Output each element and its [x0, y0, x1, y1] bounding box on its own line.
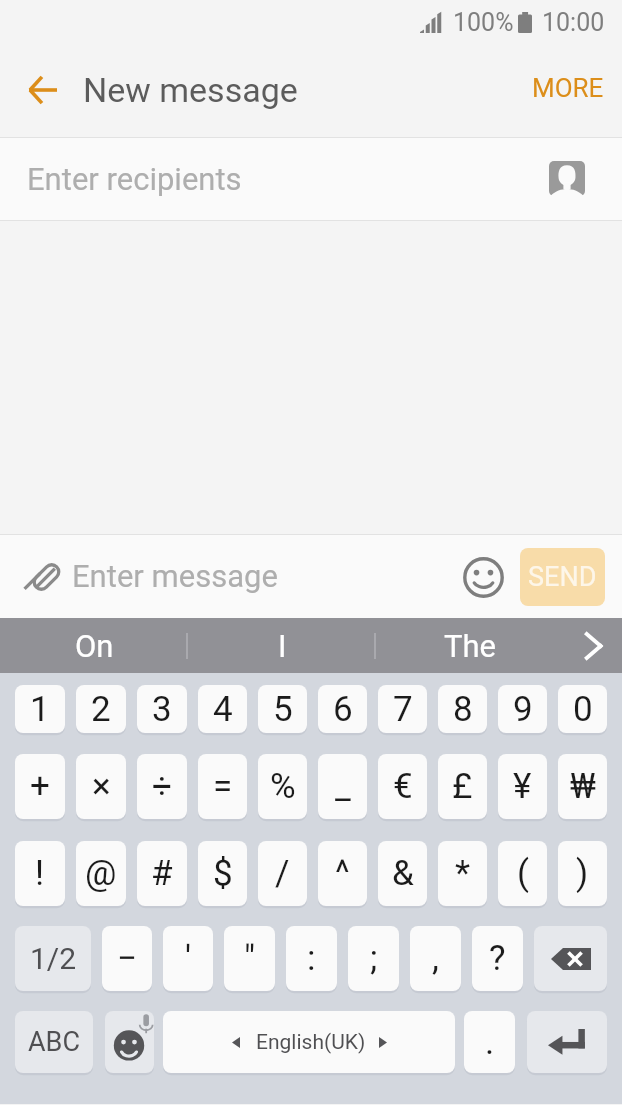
button[interactable]: " [224, 926, 275, 991]
staticText: * [455, 853, 471, 894]
staticText: ¥ [513, 766, 532, 807]
staticText: 1 [30, 689, 50, 730]
button[interactable]: ( [498, 841, 547, 906]
staticText: 6 [333, 689, 353, 730]
staticText: Enter message [72, 558, 278, 594]
staticText: ^ [335, 853, 350, 894]
staticText: On [75, 628, 114, 664]
button[interactable]: 7 [378, 685, 427, 733]
button[interactable]: I [188, 618, 376, 673]
staticText: SEND [528, 561, 597, 593]
button[interactable]: 1 [15, 685, 65, 733]
staticText: £ [452, 766, 473, 807]
staticText: ; [370, 938, 378, 979]
staticText: & [392, 853, 414, 894]
button[interactable]: The [376, 618, 564, 673]
staticText: 2 [91, 689, 111, 730]
button[interactable]: € [378, 754, 427, 819]
button[interactable]: English(UK) [163, 1011, 455, 1073]
button[interactable]: Emoji [457, 551, 509, 603]
staticText: € [393, 766, 413, 807]
staticText: . [485, 1022, 495, 1063]
button[interactable]: ABC [15, 1011, 93, 1073]
button[interactable]: ÷ [137, 754, 187, 819]
button[interactable]: # [137, 841, 187, 906]
button[interactable]: ; [348, 926, 399, 991]
button[interactable]: 9 [498, 685, 547, 733]
staticText: 3 [152, 689, 172, 730]
button[interactable]: 0 [558, 685, 607, 733]
button[interactable]: × [76, 754, 126, 819]
button[interactable]: Add recipient [549, 161, 585, 196]
staticText: English(UK) [256, 1030, 366, 1055]
staticText: Enter recipients [27, 161, 242, 197]
staticText: / [275, 853, 290, 894]
button[interactable]: Enter [527, 1011, 607, 1073]
button[interactable]: ! [15, 841, 65, 906]
staticText: " [244, 938, 256, 979]
button[interactable]: = [198, 754, 247, 819]
button[interactable]: & [378, 841, 427, 906]
button[interactable]: @ [76, 841, 126, 906]
staticText: ABC [28, 1026, 81, 1058]
staticText: − [117, 938, 138, 979]
button[interactable]: − [102, 926, 152, 991]
staticText: ! [35, 853, 45, 894]
button[interactable]: ¥ [498, 754, 547, 819]
button[interactable]: _ [318, 754, 367, 819]
button[interactable]: Emoji keyboard [105, 1011, 154, 1073]
button[interactable]: $ [198, 841, 247, 906]
staticText: The [444, 628, 497, 664]
staticText: × [92, 766, 111, 807]
staticText: 4 [213, 689, 233, 730]
button[interactable]: ' [163, 926, 213, 991]
staticText: = [213, 766, 233, 807]
button[interactable]: 8 [438, 685, 487, 733]
button[interactable]: ? [472, 926, 523, 991]
button[interactable]: £ [438, 754, 487, 819]
button[interactable]: 3 [137, 685, 187, 733]
button[interactable]: Attach [18, 549, 74, 605]
staticText: 10:00 [542, 8, 605, 37]
staticText: 100% [453, 8, 514, 37]
staticText: ' [185, 938, 192, 979]
button[interactable]: : [286, 926, 337, 991]
button[interactable]: Enter recipients [0, 138, 622, 221]
staticText: MORE [532, 73, 604, 103]
staticText: 0 [573, 689, 593, 730]
button[interactable]: ^ [318, 841, 367, 906]
button[interactable]: % [258, 754, 307, 819]
staticText: 5 [273, 689, 293, 730]
staticText: ) [576, 853, 589, 894]
button[interactable]: Back [14, 62, 70, 118]
button[interactable]: MORE [514, 57, 622, 119]
staticText: : [307, 938, 316, 979]
staticText: ₩ [570, 766, 596, 807]
staticText: New message [83, 70, 298, 110]
button[interactable]: + [15, 754, 65, 819]
button[interactable]: 2 [76, 685, 126, 733]
staticText: I [278, 628, 287, 664]
staticText: _ [335, 766, 351, 807]
button[interactable]: 6 [318, 685, 367, 733]
button[interactable]: On [0, 618, 188, 673]
staticText: ? [489, 938, 506, 979]
button[interactable]: * [438, 841, 487, 906]
button[interactable]: SEND [520, 548, 605, 606]
staticText: % [270, 766, 296, 807]
button[interactable]: . [464, 1011, 515, 1073]
staticText: 9 [513, 689, 533, 730]
button[interactable]: / [258, 841, 307, 906]
button[interactable]: More suggestions [564, 618, 622, 673]
button[interactable]: Backspace [534, 926, 607, 991]
button[interactable]: ₩ [558, 754, 607, 819]
button[interactable]: 5 [258, 685, 307, 733]
button[interactable]: 1/2 [15, 926, 91, 991]
button[interactable]: , [410, 926, 461, 991]
staticText: , [432, 938, 439, 979]
button[interactable]: ) [558, 841, 607, 906]
staticText: @ [85, 853, 117, 894]
staticText: # [151, 853, 173, 894]
staticText: $ [213, 853, 233, 894]
button[interactable]: 4 [198, 685, 247, 733]
